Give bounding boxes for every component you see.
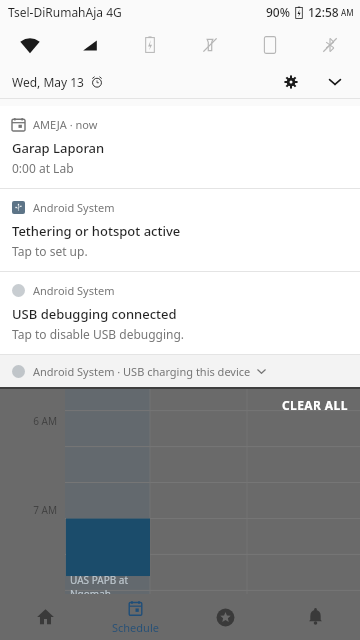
staticText: Tsel-DiRumahAja 4G — [8, 4, 122, 20]
button[interactable]: Flashlight — [180, 24, 240, 66]
staticText: Garap Laporan — [12, 139, 105, 157]
button[interactable]: Expand quick settings — [320, 67, 350, 97]
button[interactable]: Auto rotate — [240, 24, 300, 66]
staticText: CLEAR ALL — [282, 397, 348, 413]
staticText: 0:00 at Lab — [12, 160, 74, 176]
staticText: Schedule — [112, 620, 159, 635]
button[interactable]: Android System — [0, 272, 360, 355]
button[interactable]: Battery saver — [120, 24, 180, 66]
staticText: Tap to disable USB debugging. — [12, 326, 185, 342]
button[interactable]: Schedule — [90, 594, 180, 640]
staticText: Wed, May 13 — [12, 74, 84, 90]
staticText: 90% — [266, 4, 290, 20]
button[interactable]: Wed, May 13 — [12, 74, 103, 90]
button[interactable]: Android System · USB charging this devic… — [0, 355, 360, 387]
button[interactable]: Mobile data — [60, 24, 120, 66]
staticText: 7 AM — [0, 503, 57, 517]
button[interactable]: Wi-Fi — [0, 24, 60, 66]
staticText: Tap to set up. — [12, 243, 88, 259]
button[interactable]: Home — [0, 594, 90, 640]
staticText: Android System · USB charging this devic… — [33, 364, 251, 379]
staticText: Android System — [33, 283, 115, 298]
staticText: USB debugging connected — [12, 305, 177, 323]
button[interactable]: Notifications — [270, 594, 360, 640]
button[interactable]: Bluetooth — [300, 24, 360, 66]
button[interactable]: Android System — [0, 189, 360, 272]
staticText: UAS PAPB at Ngomah — [70, 573, 148, 594]
staticText: AM — [341, 7, 354, 18]
staticText: Tethering or hotspot active — [12, 222, 181, 240]
staticText: AMEJA · now — [33, 117, 98, 132]
staticText: Android System — [33, 200, 115, 215]
staticText: 12:58 — [308, 4, 339, 20]
button[interactable]: CLEAR ALL — [282, 397, 348, 413]
staticText: 6 AM — [0, 414, 57, 428]
button[interactable]: Settings — [276, 67, 306, 97]
button[interactable]: AMEJA · now — [0, 106, 360, 189]
button[interactable]: Favourites — [180, 594, 270, 640]
